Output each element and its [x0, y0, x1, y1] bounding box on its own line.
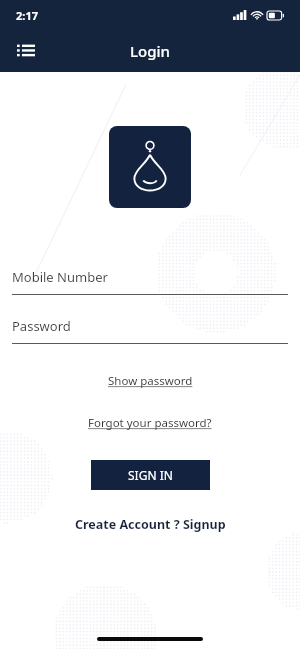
staticText: 2:17 [16, 8, 38, 23]
staticText: Create Account ? Signup [75, 516, 226, 533]
staticText: Forgot your password? [88, 415, 212, 431]
staticText: SIGN IN [128, 467, 173, 483]
button[interactable]: SIGN IN [91, 460, 210, 490]
button[interactable]: Mobile Number [12, 268, 288, 295]
button[interactable]: Show password [102, 370, 199, 392]
button[interactable]: Menu [8, 33, 44, 69]
staticText: Login [130, 41, 170, 61]
staticText: Mobile Number [12, 268, 108, 286]
staticText: Show password [108, 373, 193, 389]
button[interactable]: Create Account ? Signup [67, 512, 234, 537]
staticText: Password [12, 317, 71, 335]
button[interactable]: Password [12, 317, 288, 344]
button[interactable]: Forgot your password? [82, 412, 218, 434]
button[interactable]: App logo [109, 126, 191, 208]
